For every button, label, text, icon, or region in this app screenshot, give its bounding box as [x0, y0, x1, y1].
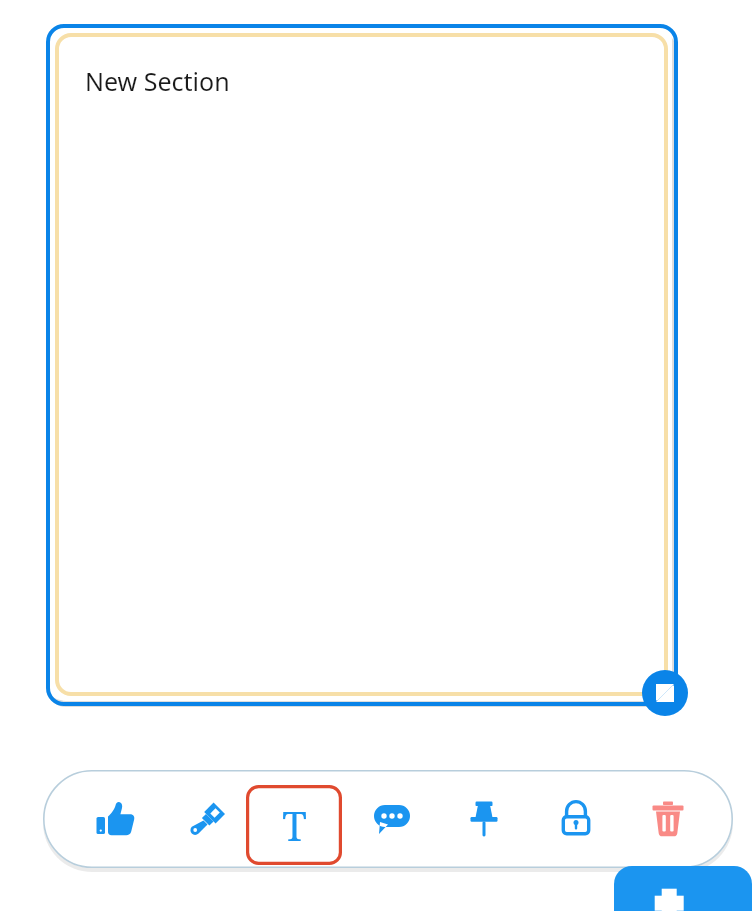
button[interactable]: Paint — [176, 787, 240, 851]
button[interactable]: Comment — [360, 787, 424, 851]
button[interactable]: Add — [614, 866, 752, 911]
button[interactable]: Delete — [636, 787, 700, 851]
button[interactable]: Resize section — [642, 670, 688, 716]
button[interactable]: Pin — [452, 787, 516, 851]
button[interactable]: Text — [246, 785, 342, 865]
staticText: T — [282, 798, 307, 852]
button[interactable]: Like — [84, 787, 148, 851]
button[interactable]: New Section — [85, 64, 230, 98]
button[interactable]: Lock — [544, 787, 608, 851]
